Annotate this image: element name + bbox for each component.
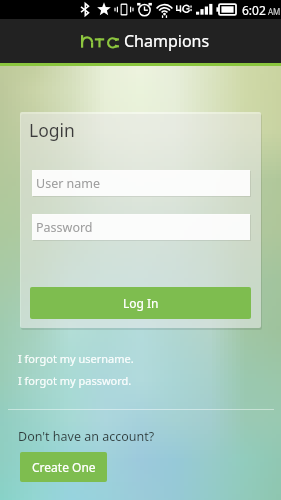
- staticText: Champions: [124, 30, 210, 52]
- staticText: 6:02: [242, 2, 266, 18]
- button[interactable]: Log In: [30, 287, 251, 319]
- staticText: Password: [36, 219, 93, 236]
- button[interactable]: Create One: [20, 452, 107, 482]
- staticText: Log In: [123, 295, 159, 311]
- button[interactable]: User name: [32, 170, 250, 196]
- button[interactable]: I forgot my username.: [18, 351, 134, 366]
- staticText: Create One: [32, 459, 96, 475]
- button[interactable]: Password: [32, 214, 250, 240]
- staticText: Login: [29, 118, 75, 142]
- staticText: User name: [36, 175, 101, 192]
- staticText: Don't have an account?: [18, 428, 155, 445]
- button[interactable]: I forgot my password.: [18, 373, 132, 388]
- staticText: AM: [268, 6, 281, 17]
